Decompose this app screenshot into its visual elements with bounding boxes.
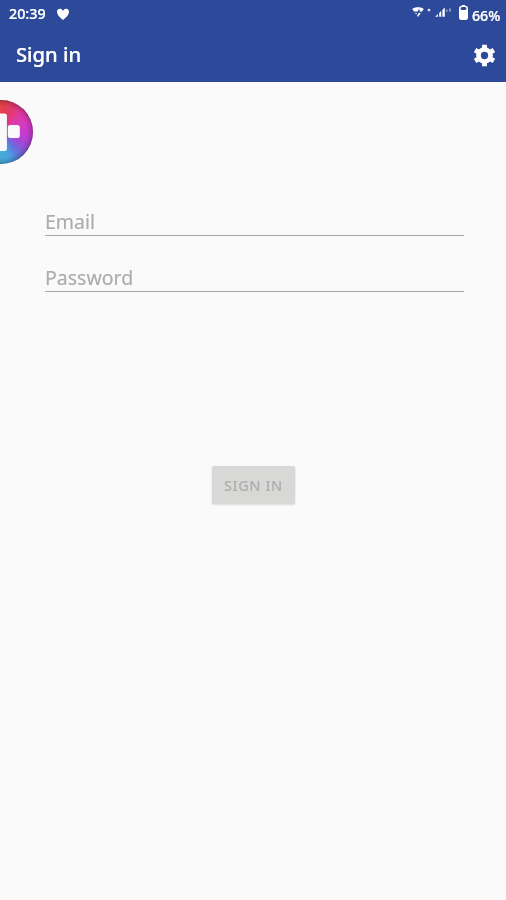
staticText: Password bbox=[45, 264, 134, 291]
staticText: Email bbox=[45, 208, 96, 235]
button[interactable]: Password bbox=[45, 264, 464, 292]
staticText: SIGN IN bbox=[224, 475, 283, 495]
button[interactable]: Email bbox=[45, 208, 464, 236]
button[interactable]: Settings bbox=[464, 35, 504, 75]
staticText: Sign in bbox=[16, 40, 82, 68]
staticText: 66% bbox=[472, 6, 501, 25]
staticText: 20:39 bbox=[9, 4, 46, 23]
button[interactable]: SIGN IN bbox=[212, 466, 295, 504]
